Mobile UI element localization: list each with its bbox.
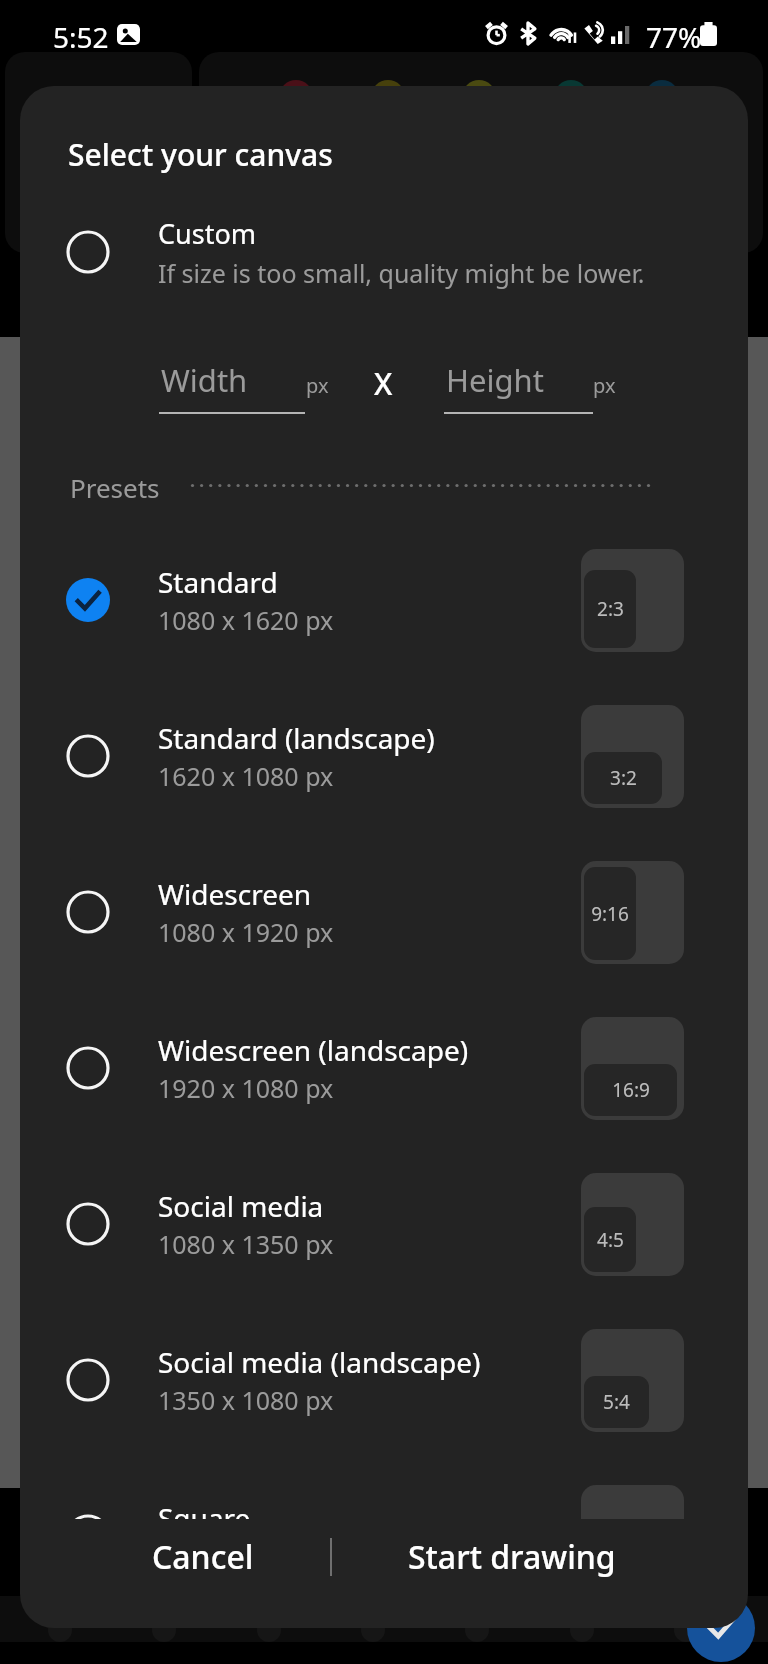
staticText: Presets bbox=[70, 470, 160, 505]
staticText: 1080 x 1920 px bbox=[158, 915, 334, 949]
staticText: 1080 x 1620 px bbox=[158, 603, 334, 637]
staticText: 1080 x 1350 px bbox=[158, 1227, 334, 1261]
staticText: Select your canvas bbox=[68, 134, 333, 175]
button[interactable]: Widescreen (landscape) bbox=[20, 990, 748, 1146]
staticText: Custom bbox=[158, 215, 257, 252]
staticText: Square bbox=[158, 1499, 251, 1519]
button[interactable]: Social media bbox=[20, 1146, 748, 1302]
staticText: X bbox=[374, 363, 393, 404]
staticText: 5:4 bbox=[603, 1389, 630, 1415]
staticText: Widescreen (landscape) bbox=[158, 1031, 469, 1069]
staticText: px bbox=[593, 372, 616, 399]
staticText: If size is too small, quality might be l… bbox=[158, 256, 645, 290]
staticText: Cancel bbox=[152, 1535, 254, 1579]
staticText: 1350 x 1080 px bbox=[158, 1383, 334, 1417]
staticText: Height bbox=[446, 359, 544, 401]
staticText: 5:52 bbox=[53, 18, 109, 56]
button[interactable]: Start drawing bbox=[332, 1513, 692, 1601]
staticText: 2:3 bbox=[597, 596, 624, 622]
staticText: Widescreen bbox=[158, 875, 312, 913]
button[interactable]: Cancel bbox=[76, 1513, 330, 1601]
button[interactable]: Standard (landscape) bbox=[20, 678, 748, 834]
staticText: px bbox=[306, 372, 329, 399]
staticText: 3:2 bbox=[610, 765, 637, 791]
staticText: 4:5 bbox=[597, 1227, 624, 1253]
staticText: 1920 x 1080 px bbox=[158, 1071, 334, 1105]
staticText: 1620 x 1080 px bbox=[158, 759, 334, 793]
button[interactable]: Social media (landscape) bbox=[20, 1302, 748, 1458]
staticText: 9:16 bbox=[591, 901, 629, 927]
staticText: 77% bbox=[646, 18, 702, 56]
staticText: Width bbox=[161, 359, 248, 401]
staticText: Start drawing bbox=[408, 1535, 616, 1579]
button[interactable]: Confirm bbox=[687, 1594, 755, 1662]
button[interactable]: Widescreen bbox=[20, 834, 748, 990]
button[interactable]: Custom bbox=[20, 204, 748, 300]
staticText: Standard (landscape) bbox=[158, 719, 435, 757]
staticText: 16:9 bbox=[612, 1077, 650, 1103]
button[interactable]: Standard bbox=[20, 522, 748, 678]
staticText: Social media bbox=[158, 1187, 324, 1225]
staticText: Social media (landscape) bbox=[158, 1343, 481, 1381]
staticText: Standard bbox=[158, 563, 278, 601]
button[interactable]: Square bbox=[20, 1458, 748, 1519]
